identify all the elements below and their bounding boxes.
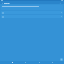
button[interactable] <box>1 11 63 14</box>
button[interactable]: Search <box>59 2 61 4</box>
button[interactable]: Saved <box>23 61 27 64</box>
button[interactable]: Add <box>60 58 63 61</box>
button[interactable]: Trips <box>37 61 41 64</box>
button[interactable]: Open navigation menu <box>1 2 3 4</box>
button[interactable]: Home <box>10 61 14 64</box>
button[interactable] <box>1 15 63 18</box>
staticText: Explore <box>4 2 10 4</box>
button[interactable] <box>1 5 63 10</box>
button[interactable]: Profile <box>50 61 54 64</box>
